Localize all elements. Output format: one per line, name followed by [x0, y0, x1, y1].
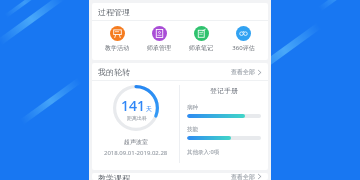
staticText: 360评估: [232, 44, 255, 52]
staticText: 我的轮转: [98, 67, 130, 77]
button[interactable]: 师承笔记: [180, 25, 222, 53]
button[interactable]: 360评估: [222, 25, 264, 53]
staticText: 其他录入:0项: [187, 148, 220, 156]
staticText: 过程管理: [98, 7, 130, 17]
staticText: 查看全部: [231, 68, 255, 76]
staticText: 技能: [187, 126, 198, 133]
staticText: 师承管理: [147, 44, 171, 52]
staticText: 教学课程: [98, 173, 130, 180]
staticText: 登记手册: [187, 86, 261, 95]
staticText: 教学活动: [105, 44, 129, 52]
staticText: 师承笔记: [189, 44, 213, 52]
other: 师承管理: [152, 26, 167, 41]
staticText: 查看全部: [231, 173, 255, 180]
other: 教学活动: [110, 26, 125, 41]
button[interactable]: 查看全部: [231, 68, 262, 76]
other: 师承笔记: [194, 26, 209, 41]
staticText: 2018.09.01-2019.02.28: [104, 149, 168, 157]
staticText: 超声波室: [124, 138, 148, 146]
button[interactable]: 师承管理: [138, 25, 180, 53]
other: 360评估: [236, 26, 251, 41]
staticText: 距离出科: [127, 115, 147, 121]
staticText: 天: [146, 105, 152, 113]
staticText: 病种: [187, 104, 198, 111]
staticText: 141: [121, 96, 146, 115]
button[interactable]: 查看全部: [231, 173, 262, 180]
button[interactable]: 教学活动: [96, 25, 138, 53]
